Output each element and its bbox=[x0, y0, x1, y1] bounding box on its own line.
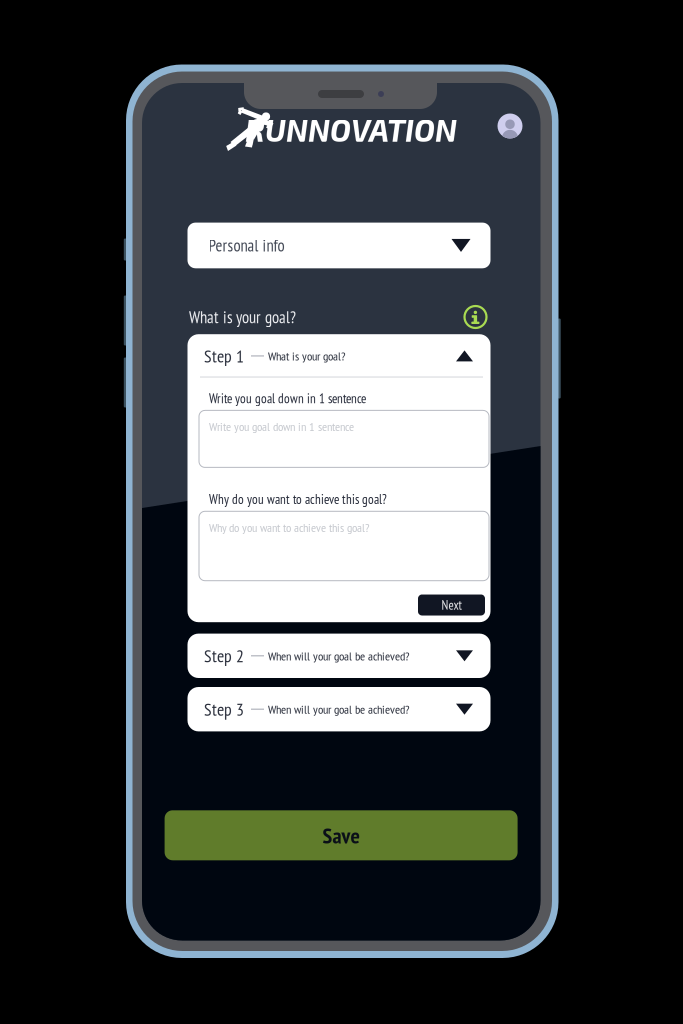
staticText: RUNNOVATION bbox=[245, 111, 457, 148]
staticText: Step 1 bbox=[204, 344, 244, 367]
staticText: When will your goal be achieved? bbox=[268, 701, 409, 717]
staticText: Step 3 bbox=[204, 698, 244, 721]
staticText: What is your goal? bbox=[268, 348, 345, 364]
staticText: Next bbox=[441, 597, 461, 613]
staticText: Step 2 bbox=[204, 644, 244, 667]
staticText: Personal info bbox=[208, 235, 284, 256]
staticText: Why do you want to achieve this goal? bbox=[209, 519, 369, 535]
button[interactable]: Account bbox=[492, 108, 528, 144]
button[interactable]: Save bbox=[165, 810, 518, 860]
button[interactable]: Personal info bbox=[187, 223, 490, 268]
button[interactable]: Step 2 bbox=[187, 634, 490, 678]
staticText: When will your goal be achieved? bbox=[268, 648, 409, 664]
button[interactable]: Step 3 bbox=[187, 687, 490, 731]
button[interactable]: More information bbox=[460, 304, 490, 330]
staticText: What is your goal? bbox=[189, 306, 296, 328]
button[interactable]: Next bbox=[418, 594, 485, 615]
staticText: Why do you want to achieve this goal? bbox=[209, 491, 387, 508]
staticText: Write you goal down in 1 sentence bbox=[209, 418, 354, 434]
staticText: Write you goal down in 1 sentence bbox=[209, 390, 366, 407]
button[interactable]: Step 1 bbox=[187, 334, 490, 378]
staticText: Save bbox=[323, 821, 360, 850]
